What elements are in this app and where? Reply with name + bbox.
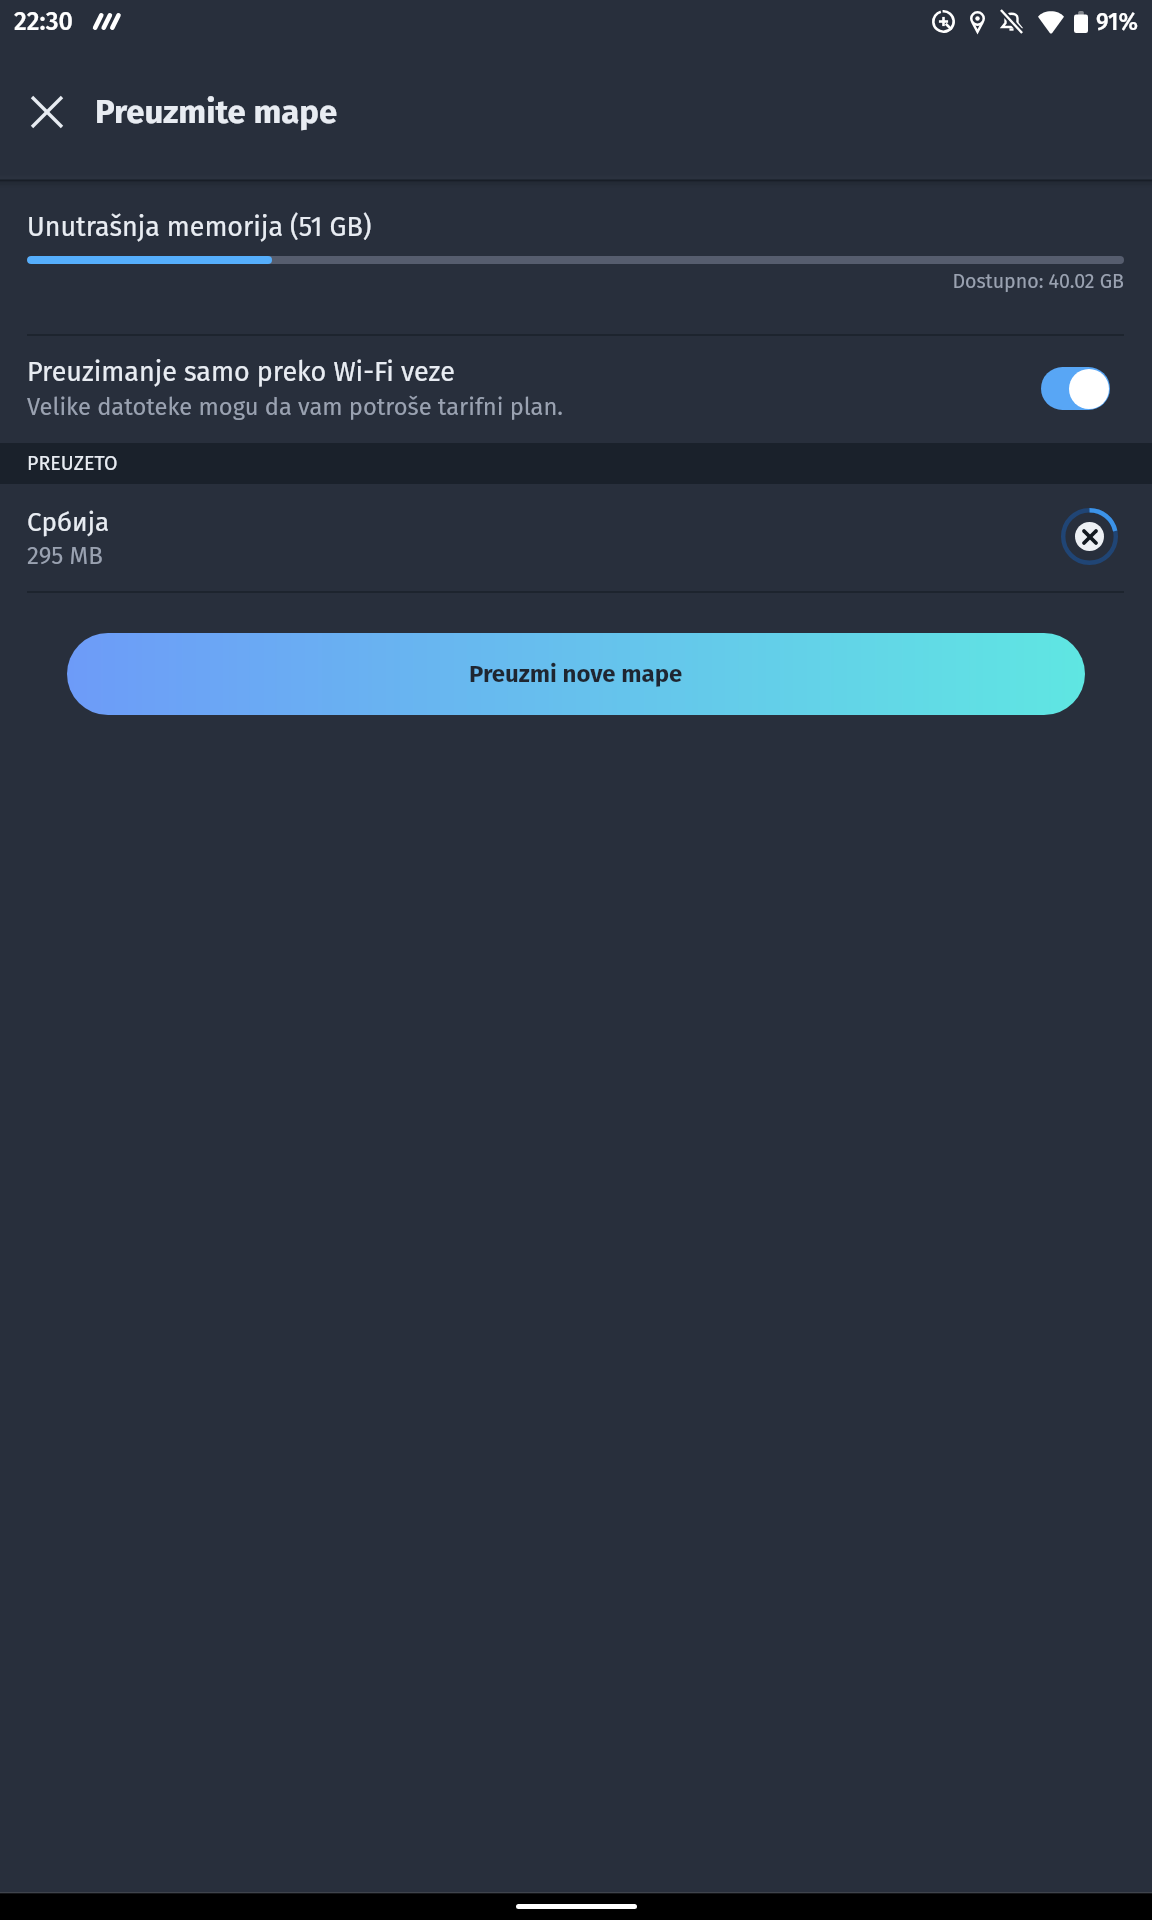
staticText: 22:30	[14, 7, 73, 37]
staticText: Preuzimanje samo preko Wi-Fi veze	[27, 356, 455, 388]
staticText: PREUZETO	[27, 452, 118, 475]
staticText: 295 MB	[27, 542, 103, 571]
staticText: Velike datoteke mogu da vam potroše tari…	[27, 393, 564, 421]
staticText: Dostupno: 40.02 GB	[0, 270, 1124, 294]
staticText: Unutrašnja memorija (51 GB)	[27, 211, 372, 243]
button[interactable]: Cancel download	[1058, 505, 1120, 567]
staticText: 91%	[1096, 8, 1138, 36]
button[interactable]: Preuzimanje samo preko Wi-Fi veze	[0, 334, 1152, 443]
button[interactable]: Србија	[0, 485, 1152, 592]
staticText: Preuzmi nove mape	[469, 660, 683, 689]
button[interactable]: Preuzmi nove mape	[67, 633, 1085, 715]
button[interactable]: Close	[13, 78, 81, 146]
staticText: Србија	[27, 507, 110, 538]
staticText: Preuzmite mape	[95, 92, 338, 131]
